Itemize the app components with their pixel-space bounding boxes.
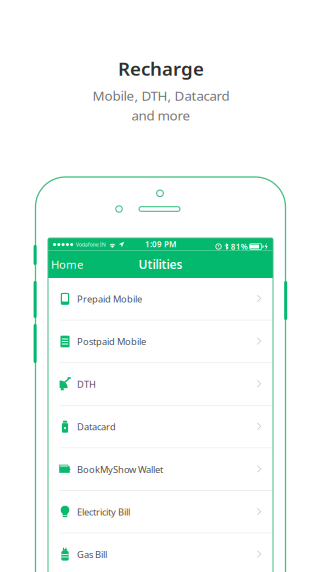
staticText: Recharge xyxy=(118,56,204,81)
staticText: and more xyxy=(131,106,190,124)
staticText: Mobile, DTH, Datacard xyxy=(92,87,229,104)
button[interactable]: BookMyShow Wallet xyxy=(48,448,273,491)
staticText: Electricity Bill xyxy=(77,506,130,518)
button[interactable]: Datacard xyxy=(48,406,273,448)
button[interactable]: Home xyxy=(48,250,89,278)
staticText: Gas Bill xyxy=(77,548,107,561)
staticText: Prepaid Mobile xyxy=(77,293,142,305)
button[interactable]: Electricity Bill xyxy=(48,491,273,534)
staticText: DTH xyxy=(77,378,96,390)
staticText: 1:09 PM xyxy=(145,239,176,250)
staticText: BookMyShow Wallet xyxy=(77,463,163,475)
staticText: 81% xyxy=(231,241,248,252)
staticText: Datacard xyxy=(77,420,116,433)
button[interactable]: Prepaid Mobile xyxy=(48,278,273,321)
staticText: Utilities xyxy=(138,256,182,272)
staticText: Vodafone IN xyxy=(76,241,106,248)
button[interactable]: Gas Bill xyxy=(48,534,273,572)
button[interactable]: DTH xyxy=(48,363,273,406)
button[interactable]: Postpaid Mobile xyxy=(48,321,273,363)
staticText: Postpaid Mobile xyxy=(77,335,146,348)
staticText: Home xyxy=(51,256,83,272)
